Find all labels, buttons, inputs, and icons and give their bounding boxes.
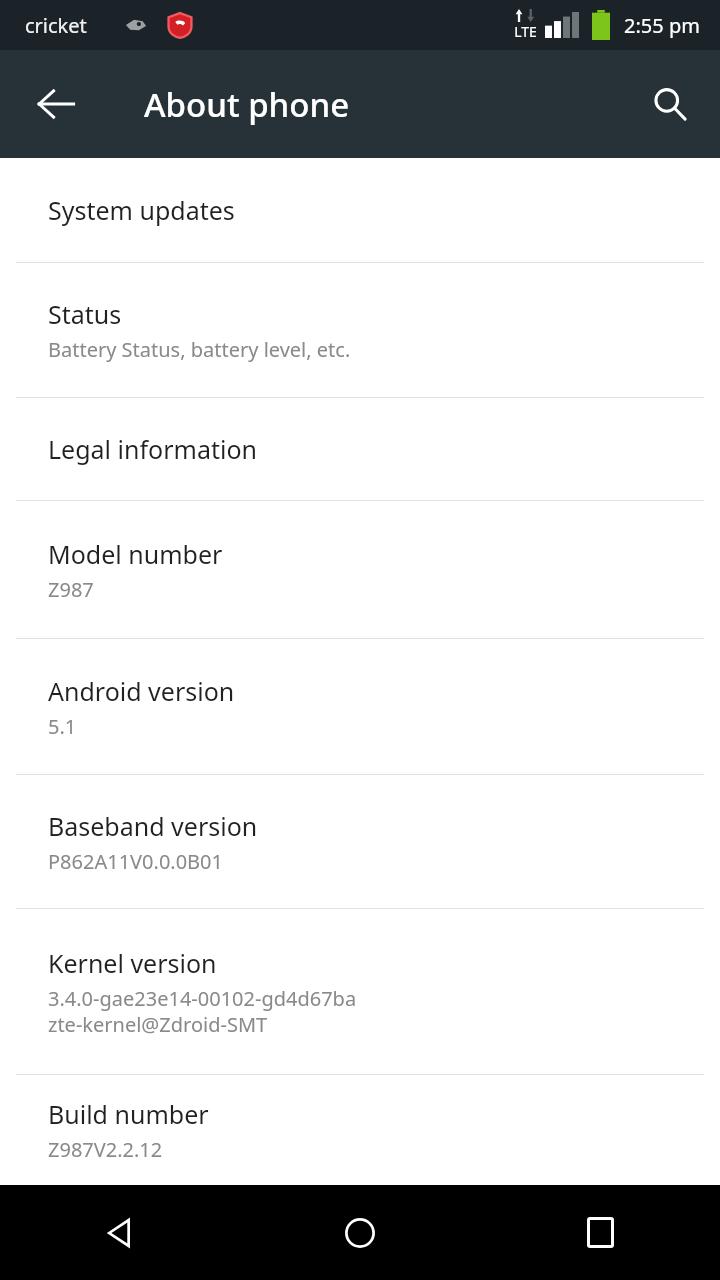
button[interactable]: Android version xyxy=(0,639,720,774)
button[interactable]: Model number xyxy=(0,501,720,638)
staticText: cricket xyxy=(25,12,87,39)
staticText: Android version xyxy=(48,674,235,708)
staticText: Battery Status, battery level, etc. xyxy=(48,336,351,363)
button[interactable]: Kernel version xyxy=(0,909,720,1074)
staticText: 2:55 pm xyxy=(624,12,700,39)
button[interactable]: Build number xyxy=(0,1075,720,1185)
staticText: Legal information xyxy=(48,432,257,466)
staticText: Z987 xyxy=(48,576,94,603)
button[interactable]: Status xyxy=(0,263,720,397)
staticText: Model number xyxy=(48,537,223,571)
staticText: 5.1 xyxy=(48,713,77,740)
button[interactable]: Recent apps xyxy=(480,1185,720,1280)
button[interactable]: Legal information xyxy=(0,398,720,500)
staticText: Build number xyxy=(48,1097,209,1131)
button[interactable]: Home xyxy=(240,1185,480,1280)
button[interactable]: Navigate up xyxy=(20,68,92,140)
staticText: About phone xyxy=(144,82,350,127)
staticText: LTE xyxy=(514,22,537,41)
staticText: P862A11V0.0.0B01 xyxy=(48,848,223,875)
staticText: System updates xyxy=(48,193,235,227)
button[interactable]: Baseband version xyxy=(0,775,720,908)
staticText: Kernel version xyxy=(48,946,217,980)
button[interactable]: System updates xyxy=(0,158,720,262)
button[interactable]: Back xyxy=(0,1185,240,1280)
staticText: Baseband version xyxy=(48,809,258,843)
staticText: 3.4.0-gae23e14-00102-gd4d67ba zte-kernel… xyxy=(48,985,357,1038)
staticText: Status xyxy=(48,297,122,331)
button[interactable]: Search xyxy=(634,68,706,140)
staticText: Z987V2.2.12 xyxy=(48,1136,163,1163)
